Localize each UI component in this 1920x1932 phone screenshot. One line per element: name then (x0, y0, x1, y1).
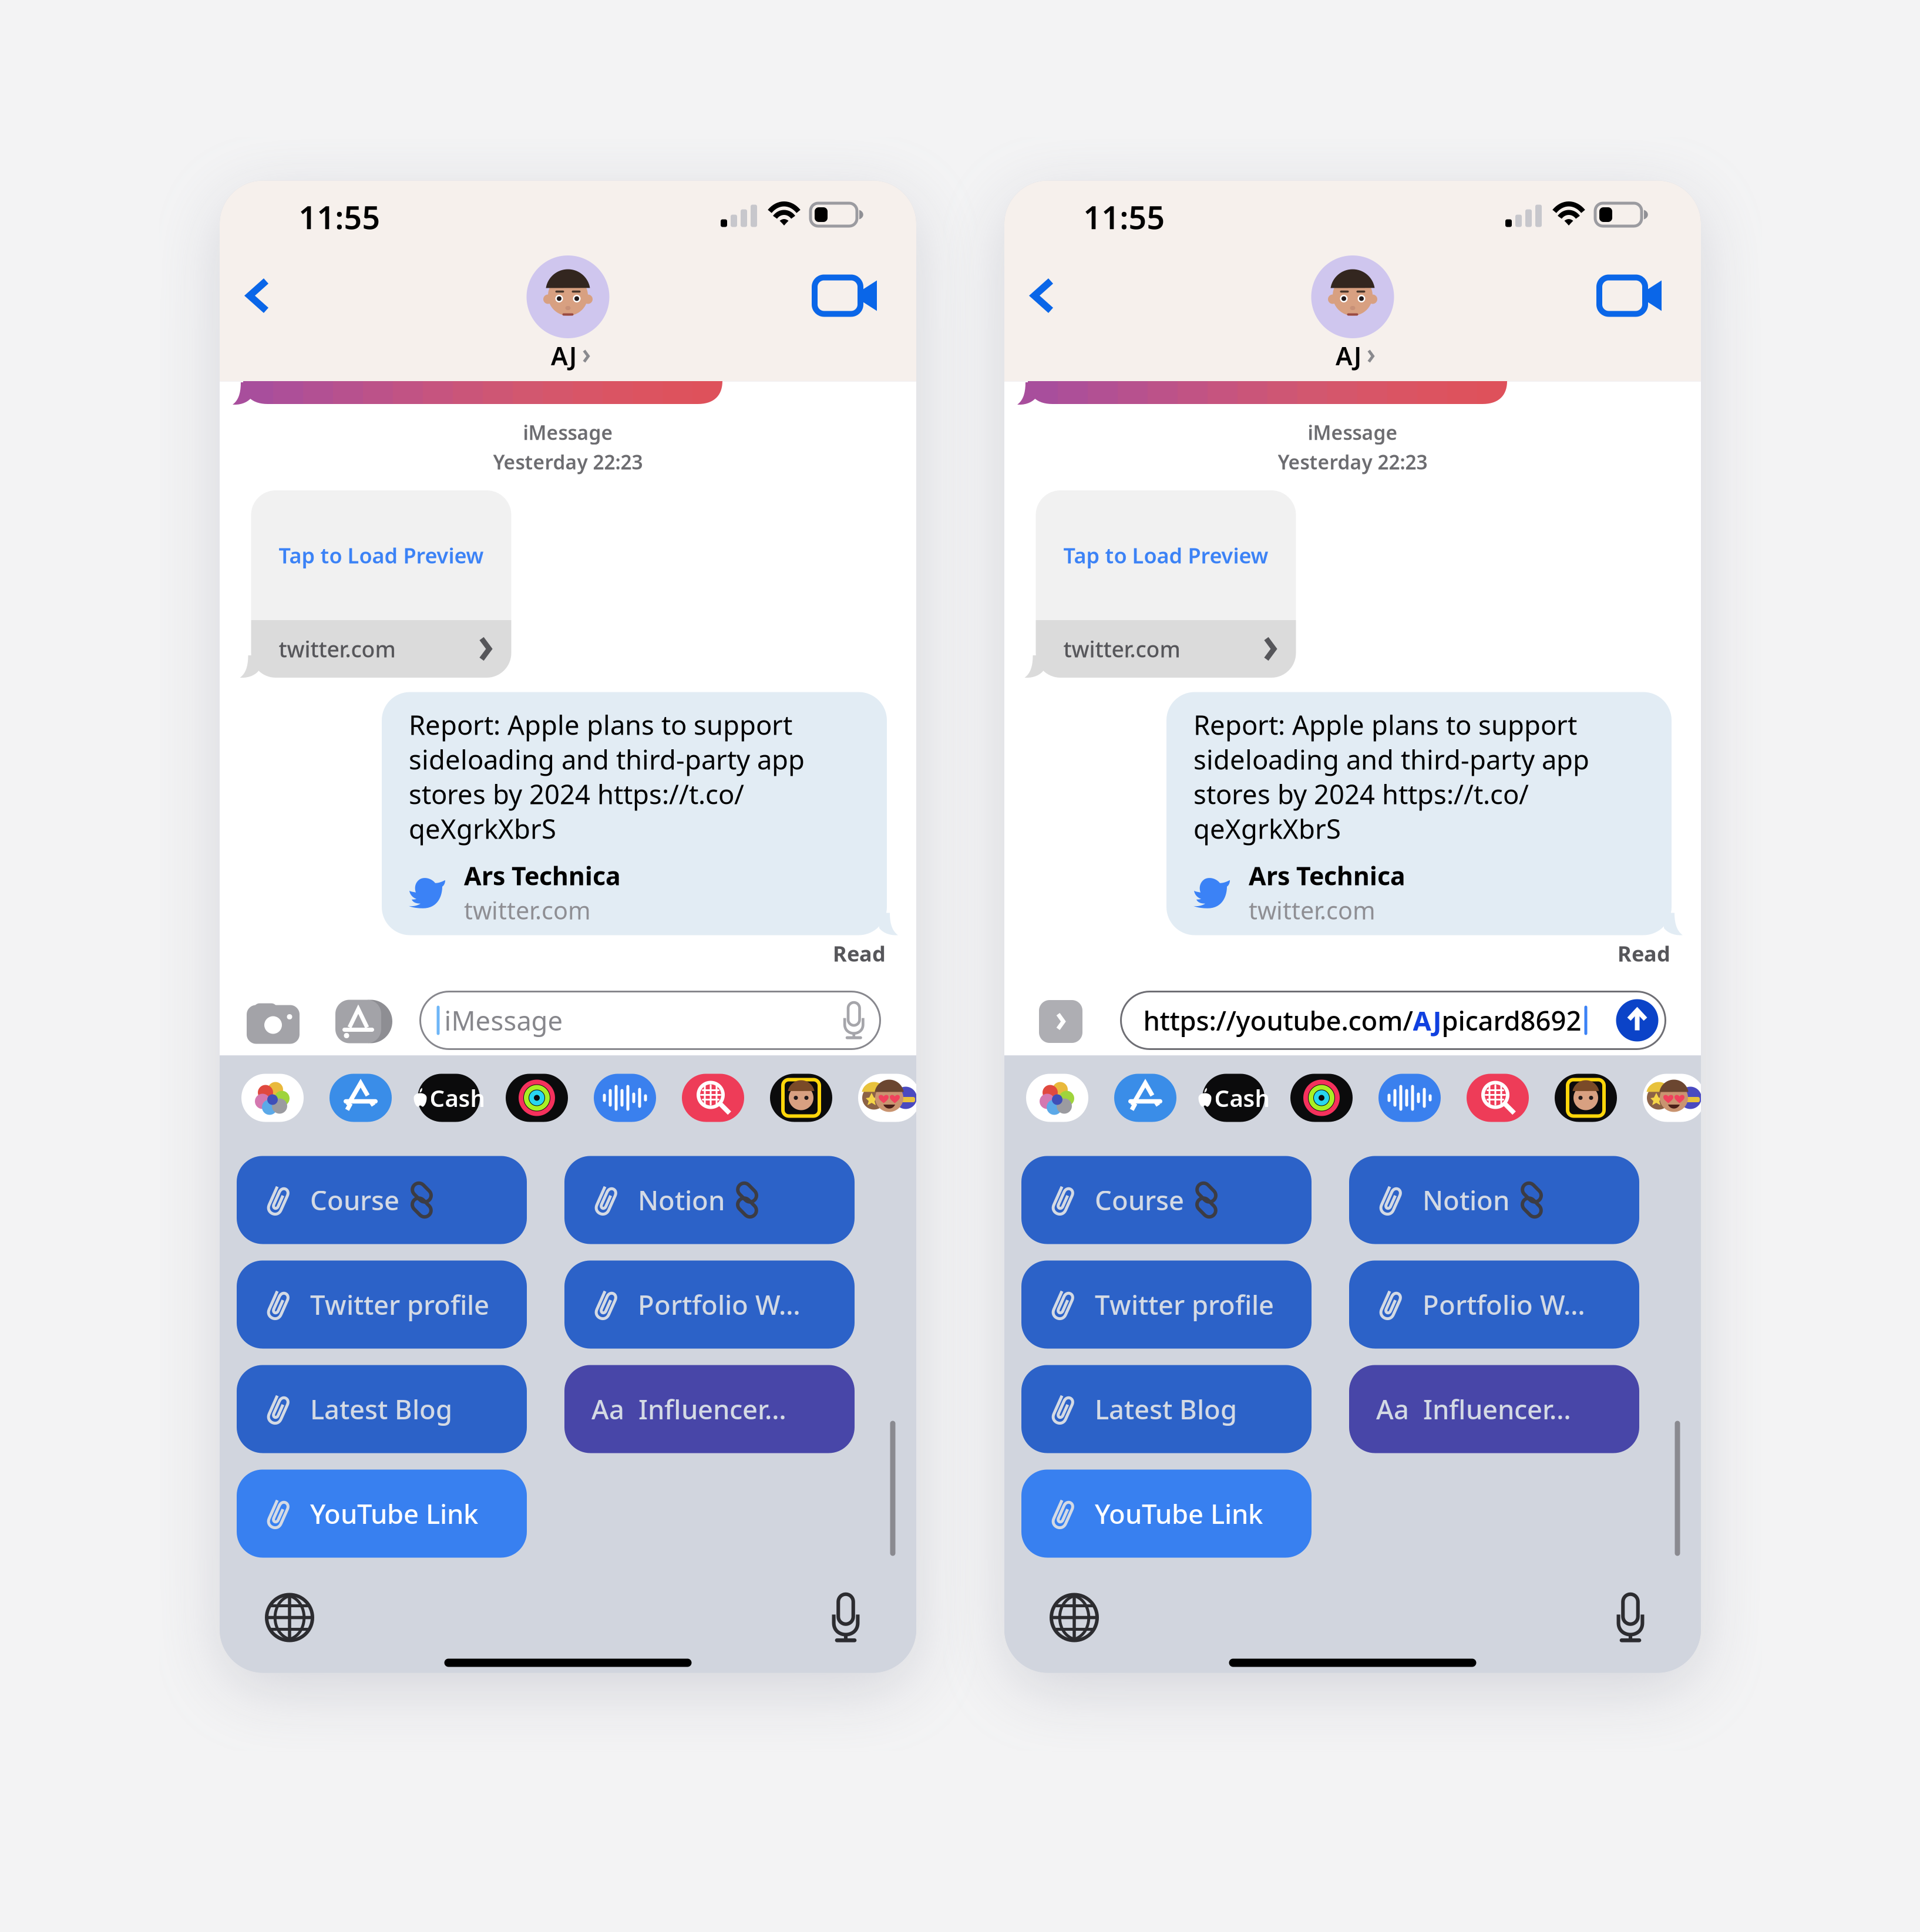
button[interactable]: Images (682, 1074, 744, 1122)
staticText: Ars Technica (464, 859, 621, 892)
staticText: Portfolio W… (1423, 1287, 1585, 1322)
button[interactable]: App Store (329, 1074, 392, 1122)
staticText: stores by 2024 https://t.co/ (409, 776, 744, 812)
button[interactable]: Fitness (506, 1074, 568, 1122)
button[interactable]: Course (237, 1156, 527, 1244)
staticText: Read (1618, 939, 1670, 967)
staticText: iMessage (1308, 419, 1398, 445)
button[interactable]: Camera (233, 986, 313, 1057)
staticText: YouTube Link (310, 1496, 478, 1531)
staticText: Cash (1214, 1082, 1270, 1113)
staticText: Influencer… (638, 1391, 786, 1427)
staticText: sideloading and third-party app (1193, 742, 1589, 777)
button[interactable]: Photos (241, 1074, 304, 1122)
staticText: Latest Blog (1095, 1391, 1237, 1427)
button[interactable]: Stickers (858, 1074, 920, 1122)
staticText: Aa (1376, 1391, 1409, 1427)
button[interactable]: Dictation (817, 1578, 874, 1657)
button[interactable]: Portfolio W… (1349, 1260, 1639, 1349)
button[interactable]: Fitness (1290, 1074, 1353, 1122)
button[interactable]: Memoji (1555, 1074, 1617, 1122)
staticText: twitter.com (279, 634, 396, 663)
button[interactable]: Show apps (1026, 987, 1095, 1056)
staticText: 11:55 (1083, 196, 1165, 238)
staticText: Influencer… (1423, 1391, 1571, 1427)
button[interactable]: Twitter profile (237, 1260, 527, 1349)
button[interactable]: Notion (1349, 1156, 1639, 1244)
staticText: https://youtube.com/ (1143, 1003, 1413, 1038)
staticText: AJ (1336, 339, 1361, 372)
staticText: Course (310, 1182, 399, 1218)
button[interactable]: Back (231, 262, 285, 329)
button[interactable]: Stickers (1643, 1074, 1705, 1122)
staticText: Twitter profile (310, 1287, 489, 1322)
button[interactable]: FaceTime (801, 263, 893, 328)
staticText: Report: Apple plans to support (409, 707, 792, 742)
staticText: Latest Blog (310, 1391, 452, 1427)
staticText: Yesterday 22:23 (493, 449, 643, 475)
staticText: iMessage (444, 1003, 563, 1038)
staticText: Report: Apple plans to support (1193, 707, 1577, 742)
staticText: YouTube Link (1095, 1496, 1263, 1531)
staticText: AJ (551, 339, 577, 372)
button[interactable]: Images (1467, 1074, 1529, 1122)
staticText: Read (833, 939, 886, 967)
staticText: 11:55 (299, 196, 380, 238)
button[interactable]: Back (1016, 262, 1070, 329)
button[interactable]: Dictation (1602, 1578, 1659, 1657)
button[interactable]: Aa (564, 1365, 855, 1453)
button[interactable]: YouTube Link (237, 1470, 527, 1558)
button[interactable]: YouTube Link (1021, 1470, 1312, 1558)
button[interactable]: Memoji (770, 1074, 832, 1122)
button[interactable]: Apple Cash (418, 1074, 480, 1122)
staticText: twitter.com (1063, 634, 1180, 663)
button[interactable]: FaceTime (1585, 263, 1678, 328)
staticText: Portfolio W… (638, 1287, 801, 1322)
button[interactable]: Switch keyboard (252, 1580, 327, 1655)
staticText: qeXgrkXbrS (409, 811, 556, 846)
staticText: twitter.com (464, 894, 591, 926)
staticText: Aa (591, 1391, 624, 1427)
button[interactable]: Portfolio W… (564, 1260, 855, 1349)
staticText: sideloading and third-party app (409, 742, 805, 777)
button[interactable]: Audio message (1378, 1074, 1441, 1122)
button[interactable]: App Store (1114, 1074, 1176, 1122)
staticText: Notion (1423, 1182, 1509, 1218)
staticText: Tap to Load Preview (279, 541, 484, 569)
button[interactable]: Audio message (594, 1074, 656, 1122)
staticText: Notion (638, 1182, 725, 1218)
staticText: Ars Technica (1249, 859, 1405, 892)
button[interactable]: Photos (1026, 1074, 1088, 1122)
button[interactable]: Twitter profile (1021, 1260, 1312, 1349)
button[interactable]: Notion (564, 1156, 855, 1244)
button[interactable]: Aa (1349, 1365, 1639, 1453)
staticText: picard8692 (1442, 1003, 1581, 1038)
button[interactable]: Course (1021, 1156, 1312, 1244)
staticText: stores by 2024 https://t.co/ (1193, 776, 1529, 812)
staticText: Cash (430, 1082, 485, 1113)
button[interactable]: Switch keyboard (1037, 1580, 1112, 1655)
button[interactable]: iMessage apps (320, 986, 403, 1057)
staticText: iMessage (523, 419, 613, 445)
button[interactable]: Latest Blog (237, 1365, 527, 1453)
staticText: AJ (1413, 1003, 1442, 1038)
staticText: Yesterday 22:23 (1278, 449, 1428, 475)
button[interactable]: Latest Blog (1021, 1365, 1312, 1453)
staticText: Tap to Load Preview (1063, 541, 1268, 569)
button[interactable]: Apple Cash (1202, 1074, 1265, 1122)
staticText: qeXgrkXbrS (1193, 811, 1341, 846)
staticText: twitter.com (1249, 894, 1376, 926)
staticText: Course (1095, 1182, 1184, 1218)
staticText: Twitter profile (1095, 1287, 1274, 1322)
